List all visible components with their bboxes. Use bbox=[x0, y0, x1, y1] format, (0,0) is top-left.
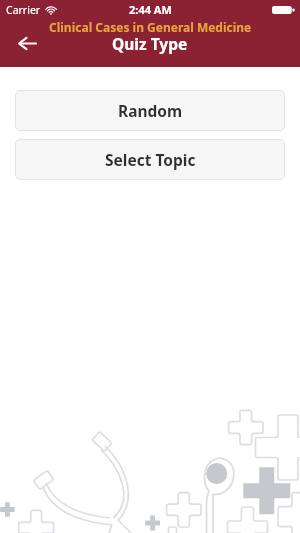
staticText: Carrier bbox=[6, 3, 41, 17]
staticText: Select Topic bbox=[105, 149, 196, 170]
button[interactable]: Back bbox=[8, 30, 47, 56]
staticText: Random bbox=[118, 100, 183, 121]
staticText: Quiz Type bbox=[112, 33, 188, 54]
staticText: Clinical Cases in General Medicine bbox=[49, 19, 252, 35]
button[interactable]: Select Topic bbox=[15, 139, 285, 180]
button[interactable]: Random bbox=[15, 90, 285, 131]
staticText: 2:44 AM bbox=[129, 2, 172, 17]
